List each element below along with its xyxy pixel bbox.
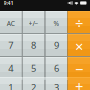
staticText: 3 <box>54 81 59 90</box>
button[interactable]: AC <box>0 11 22 33</box>
button[interactable]: 7 <box>0 34 22 56</box>
staticText: 4 <box>8 62 13 74</box>
staticText: 5 <box>31 62 36 74</box>
staticText: AC <box>7 19 15 28</box>
button[interactable]: 3 <box>45 80 67 90</box>
button[interactable]: ÷ <box>67 11 90 33</box>
staticText: 2 <box>31 81 36 90</box>
staticText: +/− <box>29 19 39 28</box>
staticText: 9 <box>54 39 59 51</box>
button[interactable]: × <box>67 34 90 56</box>
button[interactable]: 8 <box>22 34 45 56</box>
staticText: 6 <box>54 62 59 74</box>
button[interactable]: +/− <box>22 11 45 33</box>
staticText: 1 <box>8 81 13 90</box>
staticText: × <box>75 36 83 56</box>
button[interactable]: 4 <box>0 57 22 79</box>
staticText: + <box>75 76 83 90</box>
staticText: ÷ <box>75 13 83 33</box>
button[interactable]: + <box>67 80 90 90</box>
staticText: 8 <box>31 39 36 51</box>
staticText: − <box>75 59 83 79</box>
staticText: 9:41 <box>3 0 13 7</box>
button[interactable]: 2 <box>22 80 45 90</box>
staticText: % <box>53 19 59 28</box>
staticText: 7 <box>8 39 13 51</box>
button[interactable]: 1 <box>0 80 22 90</box>
button[interactable]: % <box>45 11 67 33</box>
button[interactable]: 9 <box>45 34 67 56</box>
button[interactable]: 5 <box>22 57 45 79</box>
button[interactable]: 6 <box>45 57 67 79</box>
button[interactable]: − <box>67 57 90 79</box>
